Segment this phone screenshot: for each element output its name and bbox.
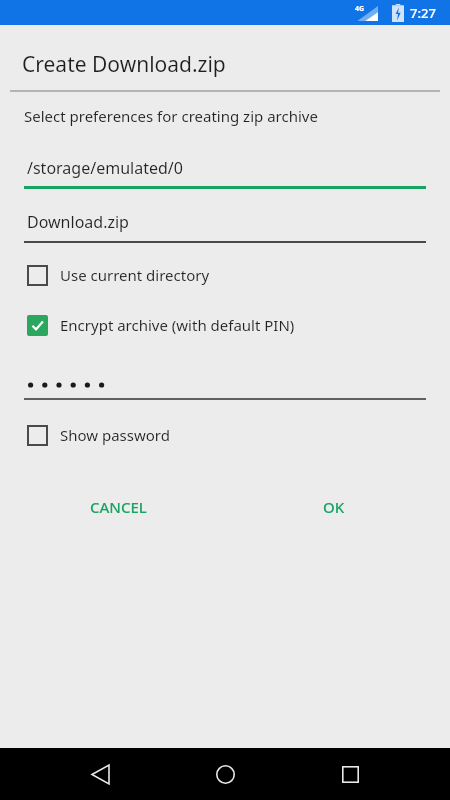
- button[interactable]: Download.zip: [24, 209, 426, 243]
- staticText: /storage/emulated/0: [27, 157, 183, 179]
- button[interactable]: CANCEL: [72, 489, 164, 525]
- staticText: CANCEL: [90, 497, 147, 517]
- button[interactable]: OK: [306, 489, 362, 525]
- staticText: 4G: [355, 4, 365, 14]
- staticText: OK: [323, 497, 345, 517]
- button[interactable]: Back: [74, 748, 126, 800]
- button[interactable]: Use current directory: [22, 258, 210, 292]
- button[interactable]: Show password: [22, 418, 170, 452]
- button[interactable]: Encrypt archive (with default PIN): [22, 308, 295, 342]
- staticText: Show password: [60, 425, 170, 445]
- staticText: Use current directory: [60, 265, 210, 285]
- button[interactable]: Recent apps: [324, 748, 376, 800]
- staticText: Create Download.zip: [22, 50, 226, 79]
- button[interactable]: [24, 368, 426, 400]
- staticText: Download.zip: [27, 211, 129, 233]
- button[interactable]: Home: [199, 748, 251, 800]
- staticText: Encrypt archive (with default PIN): [60, 315, 295, 335]
- button[interactable]: /storage/emulated/0: [24, 155, 426, 189]
- staticText: 7:27: [410, 4, 436, 22]
- staticText: Select preferences for creating zip arch…: [24, 106, 318, 126]
